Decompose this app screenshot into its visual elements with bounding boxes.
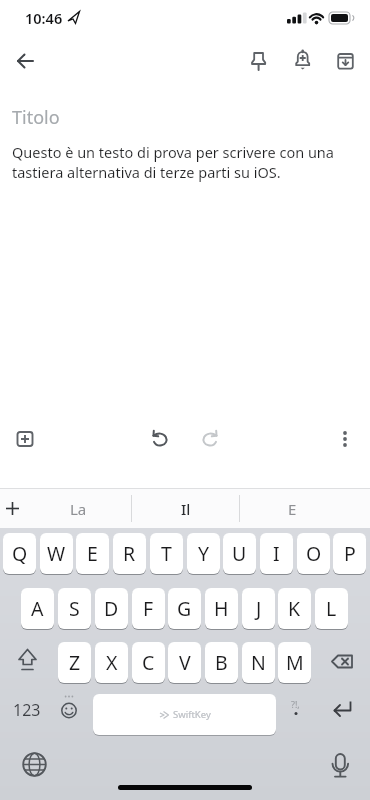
staticText: X xyxy=(106,649,118,676)
button[interactable]: J xyxy=(242,588,275,629)
staticText: E xyxy=(87,540,98,567)
button[interactable]: La xyxy=(26,489,131,528)
button[interactable] xyxy=(322,695,364,737)
button[interactable]: B xyxy=(205,642,238,683)
button[interactable] xyxy=(283,41,323,81)
button[interactable]: 123 xyxy=(6,690,48,730)
button[interactable] xyxy=(326,41,366,81)
staticText: SwiftKey xyxy=(173,708,211,721)
button[interactable]: A xyxy=(21,588,54,629)
staticText: Titolo xyxy=(12,105,60,130)
button[interactable]: X xyxy=(95,642,128,683)
button[interactable] xyxy=(49,693,89,735)
staticText: U xyxy=(232,540,247,567)
button[interactable]: I xyxy=(260,533,293,574)
staticText: B xyxy=(215,649,228,676)
button[interactable]: N xyxy=(242,642,275,683)
staticText: F xyxy=(143,595,154,622)
staticText: 10:46 xyxy=(25,8,63,28)
button[interactable]: Z xyxy=(58,642,91,683)
staticText: N xyxy=(251,649,266,676)
button[interactable]: L xyxy=(315,588,348,629)
staticText: V xyxy=(179,649,191,676)
button[interactable]: Q xyxy=(3,533,36,574)
staticText: W xyxy=(47,540,66,567)
staticText: O xyxy=(306,540,322,567)
staticText: 123 xyxy=(13,699,41,721)
button[interactable]: K xyxy=(278,588,311,629)
staticText: Questo è un testo di prova per scrivere … xyxy=(12,142,334,183)
button[interactable]: M xyxy=(278,642,311,683)
button[interactable]: E xyxy=(76,533,109,574)
button[interactable] xyxy=(7,641,48,683)
staticText: La xyxy=(70,499,87,519)
staticText: Il xyxy=(181,499,191,519)
button[interactable]: Il xyxy=(132,489,239,528)
staticText: C xyxy=(142,649,155,676)
button[interactable] xyxy=(322,748,359,784)
staticText: P xyxy=(344,540,356,567)
button[interactable]: H xyxy=(205,588,238,629)
button[interactable]: R xyxy=(113,533,146,574)
button[interactable]: O xyxy=(297,533,330,574)
staticText: L xyxy=(326,595,337,622)
button[interactable] xyxy=(4,41,44,81)
button[interactable]: ?!, xyxy=(278,695,316,737)
staticText: T xyxy=(161,540,172,567)
staticText: H xyxy=(214,595,229,622)
button[interactable] xyxy=(190,419,230,459)
staticText: R xyxy=(123,540,136,567)
button[interactable] xyxy=(15,745,54,784)
button[interactable] xyxy=(140,419,180,459)
staticText: M xyxy=(286,649,304,676)
staticText: Y xyxy=(198,540,210,567)
button[interactable] xyxy=(239,41,279,81)
button[interactable]: U xyxy=(223,533,256,574)
button[interactable] xyxy=(325,419,365,459)
button[interactable]: G xyxy=(168,588,201,629)
staticText: Q xyxy=(12,540,28,567)
staticText: G xyxy=(177,595,192,622)
staticText: S xyxy=(69,595,80,622)
button[interactable]: C xyxy=(132,642,165,683)
staticText: E xyxy=(288,499,297,519)
button[interactable]: D xyxy=(95,588,128,629)
staticText: D xyxy=(104,595,119,622)
staticText: J xyxy=(256,595,262,622)
button[interactable]: V xyxy=(168,642,201,683)
button[interactable] xyxy=(5,419,45,459)
button[interactable]: Y xyxy=(187,533,220,574)
staticText: I xyxy=(273,540,280,567)
button[interactable]: T xyxy=(150,533,183,574)
staticText: A xyxy=(31,595,44,622)
button[interactable]: SwiftKey xyxy=(93,694,276,735)
button[interactable]: E xyxy=(240,489,345,528)
staticText: K xyxy=(288,595,301,622)
button[interactable]: W xyxy=(40,533,73,574)
button[interactable] xyxy=(321,641,363,683)
staticText: ?!, xyxy=(291,698,300,710)
staticText: Z xyxy=(69,649,81,676)
button[interactable]: F xyxy=(132,588,165,629)
button[interactable]: P xyxy=(333,533,366,574)
button[interactable]: S xyxy=(58,588,91,629)
